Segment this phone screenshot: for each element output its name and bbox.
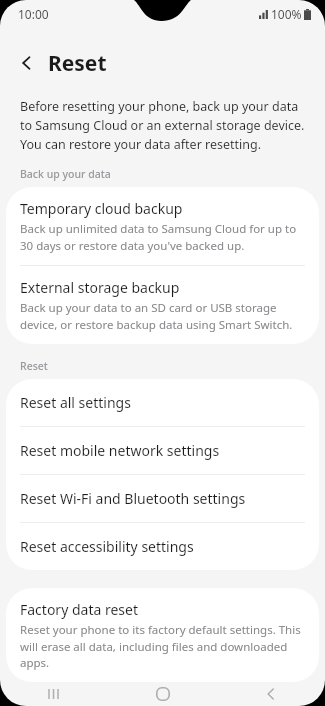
button[interactable]: Reset Wi-Fi and Bluetooth settings	[6, 475, 319, 522]
button[interactable]: Reset accessibility settings	[6, 523, 319, 570]
button[interactable]: Back	[217, 682, 325, 706]
staticText: Reset mobile network settings	[20, 441, 220, 460]
button[interactable]: Reset all settings	[6, 379, 319, 426]
staticText: Reset	[48, 49, 107, 78]
staticText: External storage backup	[20, 278, 180, 297]
button[interactable]: External storage backup	[6, 266, 319, 344]
staticText: Reset your phone to its factory default …	[20, 622, 305, 670]
staticText: Back up your data	[20, 167, 111, 181]
staticText: Before resetting your phone, back up you…	[20, 98, 305, 153]
staticText: Temporary cloud backup	[20, 199, 183, 218]
staticText: Reset accessibility settings	[20, 537, 194, 556]
staticText: 10:00	[18, 6, 49, 22]
staticText: Reset	[20, 359, 48, 373]
staticText: 100%	[271, 6, 302, 22]
staticText: Reset Wi-Fi and Bluetooth settings	[20, 489, 246, 508]
staticText: Factory data reset	[20, 600, 138, 619]
button[interactable]: Factory data reset	[6, 588, 319, 682]
button[interactable]: Temporary cloud backup	[6, 187, 319, 265]
button[interactable]: Back	[10, 46, 44, 80]
button[interactable]: Reset mobile network settings	[6, 427, 319, 474]
button[interactable]: Home	[109, 682, 217, 706]
staticText: Back up unlimited data to Samsung Cloud …	[20, 221, 305, 253]
button[interactable]: Recent apps	[0, 682, 109, 706]
staticText: Reset all settings	[20, 393, 131, 412]
staticText: Back up your data to an SD card or USB s…	[20, 300, 305, 332]
